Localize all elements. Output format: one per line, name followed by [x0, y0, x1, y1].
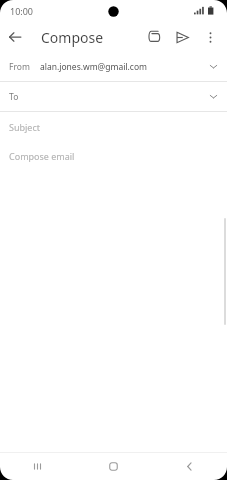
- staticText: Compose: [41, 28, 104, 47]
- button[interactable]: Recent apps: [0, 453, 75, 480]
- button[interactable]: Home: [75, 453, 151, 480]
- button[interactable]: Back: [0, 22, 30, 52]
- button[interactable]: Send: [168, 23, 196, 51]
- staticText: Subject: [9, 121, 41, 133]
- staticText: Compose email: [9, 150, 75, 162]
- button[interactable]: From: [0, 52, 227, 81]
- button[interactable]: Subject: [0, 112, 227, 141]
- button[interactable]: Back: [151, 453, 227, 480]
- staticText: 10:00: [10, 5, 34, 17]
- button[interactable]: More options: [196, 23, 224, 51]
- button[interactable]: To: [0, 82, 227, 111]
- button[interactable]: Attach file: [140, 23, 168, 51]
- staticText: alan.jones.wm@gmail.com: [40, 61, 148, 73]
- staticText: From: [9, 61, 30, 73]
- button[interactable]: Compose email: [0, 141, 227, 171]
- staticText: To: [9, 91, 19, 103]
